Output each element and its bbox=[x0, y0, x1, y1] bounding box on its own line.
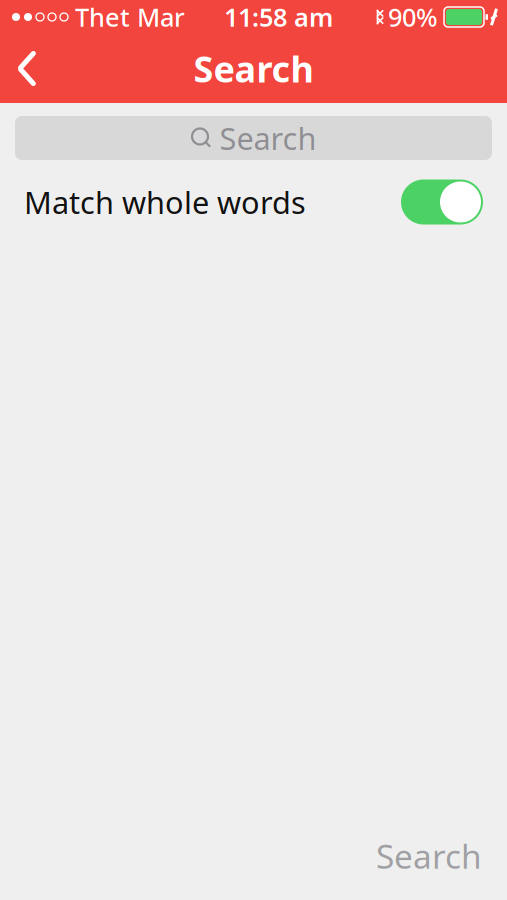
button[interactable]: Match whole words bbox=[0, 171, 507, 233]
staticText: Thet Mar bbox=[75, 0, 185, 34]
button[interactable]: Back bbox=[0, 40, 54, 96]
staticText: Match whole words bbox=[24, 182, 306, 222]
staticText: 11:58 am bbox=[224, 0, 333, 34]
button[interactable]: Search bbox=[15, 116, 492, 160]
staticText: Search bbox=[376, 834, 482, 878]
staticText: 90% bbox=[388, 0, 438, 34]
staticText: Search bbox=[193, 45, 313, 92]
staticText: Search bbox=[219, 118, 316, 158]
